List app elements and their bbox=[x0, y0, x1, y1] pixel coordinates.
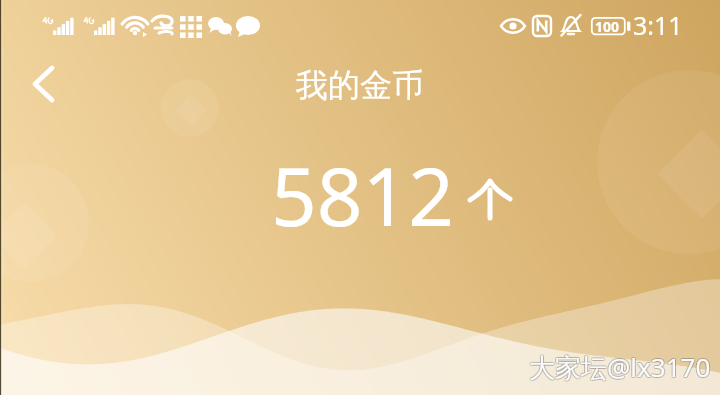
button[interactable]: Back bbox=[18, 60, 66, 108]
staticText: 5812 bbox=[271, 140, 455, 249]
staticText: 3:11 bbox=[633, 8, 683, 42]
staticText: 大家坛@lx3170 bbox=[528, 348, 710, 384]
staticText: 大家坛@lx3170 bbox=[530, 348, 712, 384]
staticText: 大家坛@lx3170 bbox=[529, 349, 711, 385]
staticText: 大家坛@lx3170 bbox=[529, 350, 711, 386]
staticText: 大家坛@lx3170 bbox=[530, 350, 712, 386]
staticText: 大家坛@lx3170 bbox=[528, 349, 710, 385]
staticText: 100 bbox=[595, 17, 620, 35]
staticText: 大家坛@lx3170 bbox=[530, 349, 712, 385]
staticText: 大家坛@lx3170 bbox=[529, 348, 711, 384]
staticText: 大家坛@lx3170 bbox=[528, 350, 710, 386]
staticText: 我的金币 bbox=[296, 65, 424, 105]
